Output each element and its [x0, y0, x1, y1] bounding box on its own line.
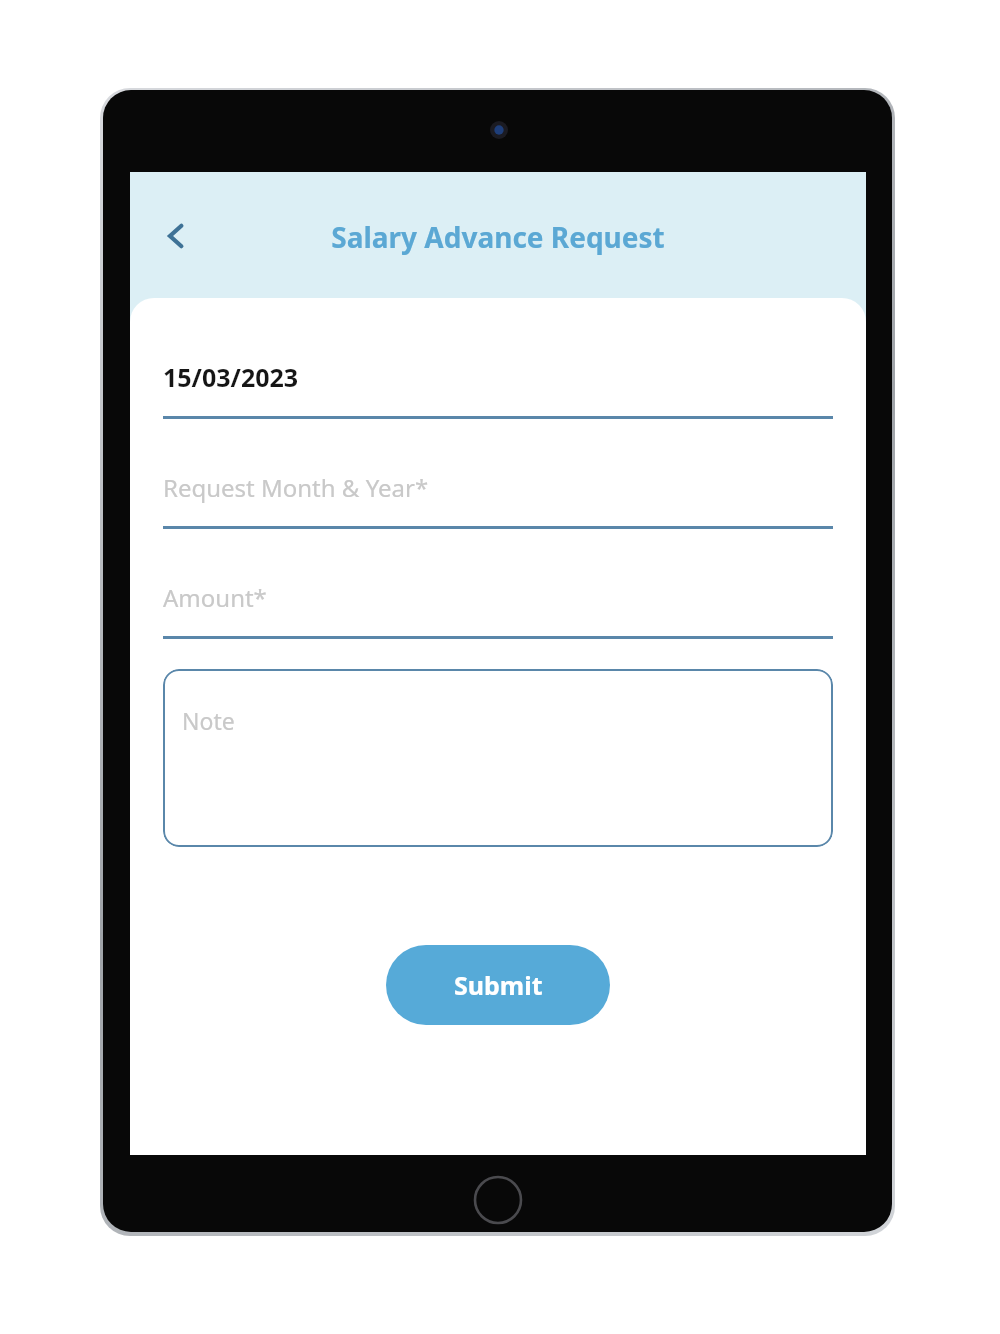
staticText: Salary Advance Request [331, 218, 665, 256]
button[interactable]: 15/03/2023 [130, 360, 866, 419]
button[interactable]: Amount* [130, 581, 866, 639]
staticText: Submit [454, 968, 543, 1002]
staticText: Note [182, 705, 235, 736]
staticText: 15/03/2023 [163, 360, 299, 394]
button[interactable]: Note [163, 669, 833, 847]
button[interactable]: Request Month & Year* [130, 471, 866, 529]
button[interactable]: Back [148, 208, 204, 264]
staticText: Amount* [163, 581, 267, 614]
staticText: Request Month & Year* [163, 471, 429, 504]
button[interactable]: Submit [386, 945, 610, 1025]
